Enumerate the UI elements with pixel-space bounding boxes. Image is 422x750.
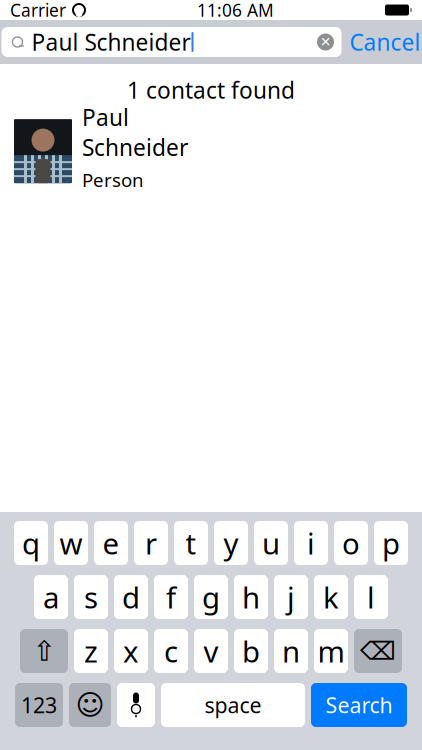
staticText: k [323,577,339,616]
button[interactable]: 123 [15,683,63,727]
button[interactable]: u [254,521,288,565]
staticText: n [282,631,300,670]
button[interactable]: t [174,521,208,565]
button[interactable]: a [34,575,68,619]
staticText: 123 [21,691,57,719]
staticText: v [203,631,218,670]
staticText: Cancel [349,27,420,57]
button[interactable]: Clear text [309,27,341,57]
staticText: 11:06 AM [197,0,274,21]
staticText: u [262,523,280,562]
button[interactable]: z [74,629,108,673]
staticText: y [223,523,238,562]
button[interactable]: f [154,575,188,619]
button[interactable]: p [374,521,408,565]
button[interactable]: o [334,521,368,565]
staticText: w [59,523,82,562]
button[interactable]: y [214,521,248,565]
staticText: d [122,577,140,616]
button[interactable]: h [234,575,268,619]
button[interactable]: b [234,629,268,673]
button[interactable]: g [194,575,228,619]
button[interactable]: l [354,575,388,619]
staticText: a [43,577,59,616]
staticText: c [164,631,178,670]
staticText: o [342,523,360,562]
staticText: ⌫ [360,637,396,665]
button[interactable]: Search [311,683,407,727]
staticText: ☺ [75,689,104,721]
button[interactable]: d [114,575,148,619]
staticText: i [307,523,315,562]
staticText: h [242,577,260,616]
button[interactable]: r [134,521,168,565]
staticText: r [145,523,157,562]
staticText: s [84,577,98,616]
button[interactable]: x [114,629,148,673]
staticText: g [202,577,220,616]
staticText: j [287,577,295,616]
button[interactable]: n [274,629,308,673]
staticText: l [367,577,375,616]
button[interactable]: Delete [354,629,402,673]
staticText: Paul Schneider [82,102,188,162]
staticText: z [84,631,98,670]
button[interactable]: s [74,575,108,619]
button[interactable]: k [314,575,348,619]
staticText: space [204,691,261,719]
button[interactable]: Cancel [341,20,422,64]
staticText: p [382,523,400,562]
staticText: q [22,523,40,562]
button[interactable]: Paul Schneider [0,105,422,183]
button[interactable]: j [274,575,308,619]
button[interactable]: Shift [20,629,68,673]
staticText: ✕ [320,34,331,49]
button[interactable]: Emoji keyboard [69,683,111,727]
staticText: f [166,577,176,616]
button[interactable]: v [194,629,228,673]
button[interactable]: space [161,683,305,727]
staticText: b [242,631,260,670]
staticText: t [185,523,196,562]
staticText: Search [325,691,392,719]
staticText: 1 contact found [127,75,295,105]
button[interactable]: m [314,629,348,673]
button[interactable]: c [154,629,188,673]
staticText: Paul Schneider [31,27,190,57]
staticText: ⇧ [32,635,55,667]
staticText: e [102,523,119,562]
button[interactable]: w [54,521,88,565]
staticText: Person [82,167,144,192]
staticText: m [317,631,344,670]
button[interactable]: i [294,521,328,565]
staticText: x [123,631,139,670]
staticText: Carrier [10,0,66,21]
button[interactable]: e [94,521,128,565]
button[interactable]: q [14,521,48,565]
button[interactable]: Dictate [117,683,155,727]
